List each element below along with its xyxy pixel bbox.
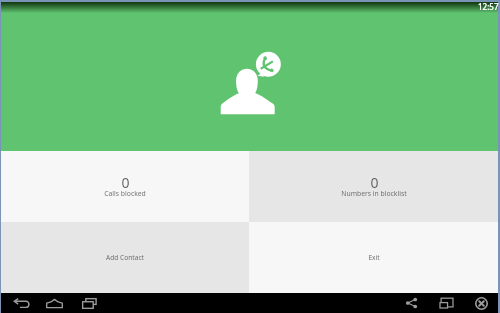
button[interactable]: 0 — [1, 151, 249, 222]
staticText: 0 — [370, 173, 379, 192]
button[interactable]: Recent apps — [77, 293, 103, 313]
button[interactable]: Home — [41, 293, 67, 313]
button[interactable]: Close — [470, 293, 492, 313]
staticText: 0 — [121, 173, 130, 192]
button[interactable]: Share — [400, 293, 422, 313]
staticText: Add Contact — [106, 253, 144, 262]
staticText: Calls blocked — [104, 189, 146, 198]
staticText: Numbers in blocklist — [341, 189, 407, 198]
staticText: Exit — [368, 253, 380, 262]
button[interactable]: Back — [8, 293, 34, 313]
button[interactable]: 0 — [249, 151, 498, 222]
staticText: 12:57 — [478, 1, 499, 12]
button[interactable]: Multi window — [435, 293, 457, 313]
button[interactable]: Add Contact — [1, 222, 249, 293]
button[interactable]: Exit — [249, 222, 498, 293]
